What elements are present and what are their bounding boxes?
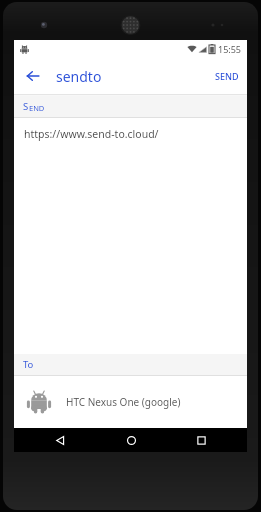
staticText: sendto — [56, 67, 102, 86]
button[interactable]: https://www.send-to.cloud/ — [14, 118, 247, 354]
button[interactable]: Home — [106, 428, 156, 452]
button[interactable]: SEND — [207, 58, 247, 94]
staticText: S — [23, 100, 29, 113]
staticText: HTC Nexus One (google) — [66, 395, 181, 409]
button[interactable]: Navigate up — [20, 63, 46, 89]
staticText: https://www.send-to.cloud/ — [24, 127, 159, 141]
button[interactable]: Recent apps — [176, 428, 226, 452]
button[interactable]: HTC Nexus One (google) — [14, 376, 247, 428]
staticText: 15:55 — [218, 43, 242, 55]
staticText: To — [23, 358, 34, 371]
button[interactable]: Back — [35, 428, 85, 452]
staticText: END — [29, 103, 45, 113]
staticText: SEND — [215, 70, 239, 82]
